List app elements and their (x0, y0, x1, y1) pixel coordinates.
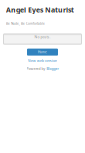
staticText: Powered by (26, 66, 45, 71)
staticText: View web version (28, 58, 57, 63)
staticText: Be Nude, Be Comfortable (6, 21, 45, 26)
button[interactable]: View web version (0, 59, 85, 63)
button[interactable]: Blogger (46, 66, 58, 71)
button[interactable]: Home (27, 49, 58, 56)
staticText: Blogger (46, 66, 58, 71)
staticText: Angel Eyes Naturist (6, 5, 74, 14)
staticText: Home (38, 50, 47, 54)
staticText: No posts. (34, 35, 50, 39)
